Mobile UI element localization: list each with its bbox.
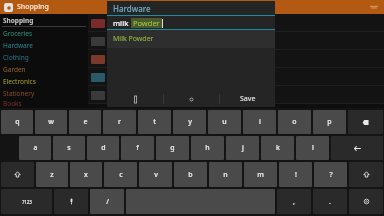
button[interactable] [88,14,384,32]
button[interactable]: Backspace [348,110,383,134]
button[interactable]: App icon [4,3,13,12]
button[interactable] [88,32,384,50]
staticText: a [33,143,38,153]
button[interactable]: Emoji [349,189,383,214]
staticText: v [154,170,158,180]
staticText: f [136,143,139,153]
button[interactable]: Garden [3,63,88,75]
staticText: e [83,117,88,127]
button[interactable]: z [36,162,68,187]
staticText: , [293,197,295,207]
button[interactable]: r [103,110,136,134]
button[interactable]: v [139,162,172,187]
button[interactable]: i [243,110,276,134]
staticText: Save [240,94,256,104]
staticText: n [223,170,228,180]
staticText: q [15,117,20,127]
button[interactable]: ? [314,162,347,187]
staticText: Electronics [3,77,36,86]
staticText: Stationery [3,89,35,98]
button[interactable]: u [208,110,241,134]
staticText: z [50,170,54,180]
button[interactable]: w [35,110,67,134]
staticText: Groceries [3,29,33,38]
button[interactable]: Attach [164,91,219,107]
staticText: u [222,117,227,127]
staticText: m [257,170,264,180]
button[interactable]: Groceries [3,27,88,39]
button[interactable]: Shift [1,162,34,187]
staticText: j [242,143,244,153]
button[interactable] [88,50,384,68]
staticText: y [188,117,192,127]
button[interactable]: Voice input [54,189,88,214]
button[interactable]: k [261,136,294,160]
button[interactable]: d [87,136,119,160]
button[interactable]: . [313,189,347,214]
staticText: h [205,143,210,153]
staticText: milk [113,18,129,28]
button[interactable]: a [19,136,51,160]
staticText: g [170,143,175,153]
button[interactable]: ?123 [1,189,52,214]
button[interactable]: Enter [331,136,383,160]
staticText: Clothing [3,53,29,62]
button[interactable]: Save [220,91,275,107]
staticText: s [67,143,71,153]
button[interactable]: l [296,136,329,160]
staticText: k [276,143,280,153]
staticText: Milk Powder [113,34,154,44]
button[interactable]: e [69,110,101,134]
button[interactable]: Clothing [3,51,88,63]
staticText: Garden [3,65,26,74]
staticText: Hardware [113,3,151,14]
staticText: Shopping [3,16,34,25]
button[interactable]: / [90,189,124,214]
staticText: t [153,117,156,127]
button[interactable]: t [138,110,171,134]
button[interactable]: Milk Powder [113,30,275,48]
staticText: Shopping [17,2,49,12]
button[interactable] [88,86,384,104]
staticText: p [327,117,332,127]
button[interactable]: m [244,162,277,187]
button[interactable]: s [53,136,85,160]
button[interactable]: o [278,110,311,134]
button[interactable]: h [191,136,224,160]
button[interactable] [88,68,384,86]
button[interactable]: q [1,110,33,134]
staticText: w [48,117,54,127]
staticText: r [118,117,121,127]
button[interactable]: n [209,162,242,187]
button[interactable]: j [226,136,259,160]
button[interactable]: g [156,136,189,160]
staticText: Powder [131,18,162,28]
staticText: b [188,170,193,180]
staticText: ! [295,170,297,180]
button[interactable]: More options [368,1,380,13]
button[interactable]: p [313,110,346,134]
button[interactable]: b [174,162,207,187]
button[interactable]: c [104,162,137,187]
button[interactable]: Books [3,99,88,108]
button[interactable]: Shift [349,162,383,187]
staticText: c [119,170,123,180]
button[interactable]: Electronics [3,75,88,87]
button[interactable]: Hardware [3,39,88,51]
button[interactable]: ! [279,162,312,187]
staticText: ? [329,170,333,180]
button[interactable]: x [70,162,102,187]
button[interactable]: milk [113,16,275,29]
button[interactable]: Shopping [3,14,88,26]
button[interactable]: Add note [107,91,163,107]
button[interactable]: f [121,136,154,160]
staticText: o [292,117,297,127]
staticText: / [106,197,109,207]
button[interactable]: , [277,189,311,214]
button[interactable]: Stationery [3,87,88,99]
staticText: i [259,117,261,127]
staticText: x [84,170,88,180]
staticText: d [101,143,106,153]
button[interactable]: y [173,110,206,134]
